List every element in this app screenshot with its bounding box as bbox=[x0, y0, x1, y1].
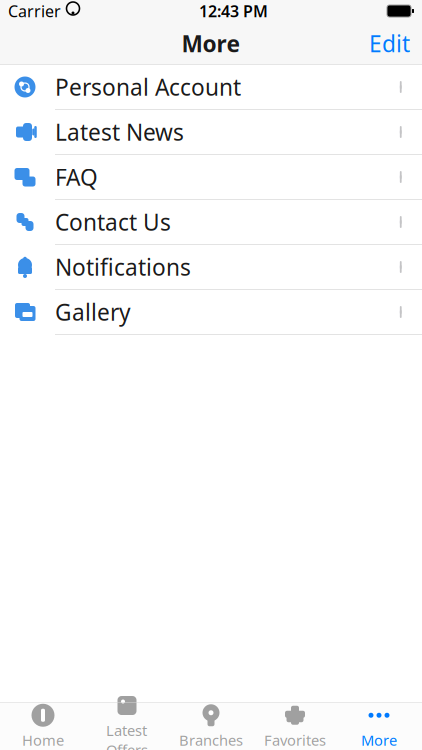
button[interactable]: More bbox=[337, 702, 421, 750]
staticText: Latest Offers bbox=[106, 720, 148, 750]
button[interactable]: FAQ bbox=[0, 155, 422, 200]
button[interactable]: Contact Us bbox=[0, 200, 422, 245]
staticText: Gallery bbox=[55, 297, 131, 327]
button[interactable]: Personal Account bbox=[0, 65, 422, 110]
button[interactable]: Home bbox=[1, 702, 85, 750]
button[interactable]: Favorites bbox=[253, 702, 337, 750]
staticText: Notifications bbox=[55, 252, 191, 282]
staticText: Favorites bbox=[264, 730, 326, 750]
staticText: FAQ bbox=[55, 162, 98, 192]
staticText: Branches bbox=[179, 730, 243, 750]
staticText: 12:43 PM bbox=[199, 0, 268, 22]
button[interactable]: Gallery bbox=[0, 290, 422, 335]
staticText: Latest News bbox=[55, 117, 184, 147]
button[interactable]: Latest News bbox=[0, 110, 422, 155]
staticText: Edit bbox=[369, 28, 410, 58]
button[interactable]: Branches bbox=[169, 702, 253, 750]
button[interactable]: Edit bbox=[357, 20, 422, 66]
staticText: Carrier bbox=[8, 0, 61, 22]
staticText: More bbox=[361, 730, 397, 750]
staticText: Contact Us bbox=[55, 207, 171, 237]
staticText: More bbox=[181, 28, 240, 58]
button[interactable]: Notifications bbox=[0, 245, 422, 290]
button[interactable]: Latest Offers bbox=[85, 702, 169, 750]
staticText: Home bbox=[22, 730, 64, 750]
staticText: Personal Account bbox=[55, 72, 241, 102]
